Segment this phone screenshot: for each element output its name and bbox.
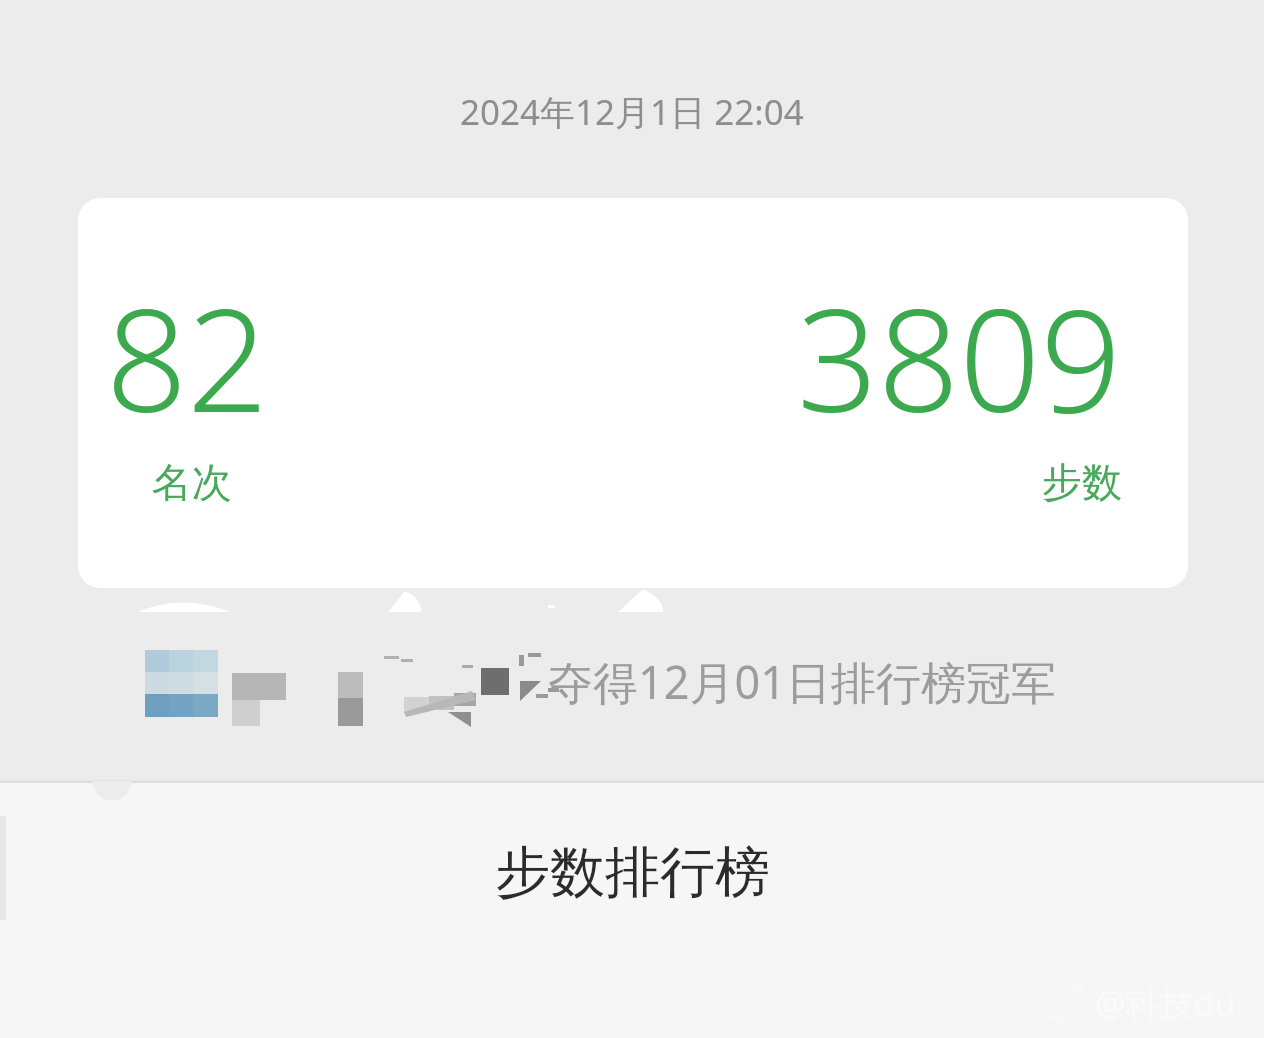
staticText: 步数: [1042, 457, 1122, 507]
staticText: 夺得12月01日排行榜冠军: [548, 651, 1056, 712]
staticText: 步数排行榜: [495, 838, 770, 907]
staticText: 名次: [152, 457, 232, 507]
staticText: 2024年12月1日 22:04: [460, 88, 804, 136]
staticText: 82: [106, 260, 269, 453]
button[interactable]: 82: [78, 198, 1188, 588]
staticText: 3809: [797, 260, 1122, 453]
